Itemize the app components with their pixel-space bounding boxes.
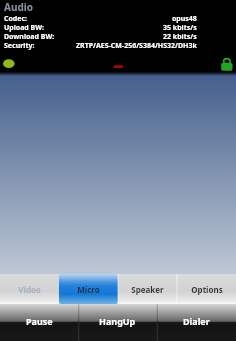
staticText: Pause [26,315,53,327]
button[interactable]: Pause [0,304,78,341]
staticText: Upload BW: [4,23,45,32]
staticText: Codec: [4,14,28,23]
staticText: HangUp [99,315,136,327]
button[interactable]: HangUp [78,304,157,341]
staticText: opus48 [172,14,197,23]
staticText: Security: [4,41,35,50]
button[interactable]: Options [177,274,236,304]
button[interactable]: Micro [59,274,118,304]
staticText: 35 kbits/s [163,23,197,32]
staticText: ZRTP/AES-CM-256/S384/HS32/DH3k [76,41,197,50]
button[interactable]: Speaker [118,274,177,304]
staticText: Speaker [131,284,164,295]
staticText: Video [18,284,41,295]
button[interactable]: Video [0,274,59,304]
staticText: Audio [4,0,33,14]
other: Call is encrypted [0,0,236,72]
staticText: Download BW: [4,32,55,41]
staticText: Micro [77,284,100,295]
button[interactable]: Dialer [157,304,236,341]
staticText: 22 kbits/s [163,32,197,41]
staticText: Dialer [183,315,210,327]
staticText: Options [191,284,223,295]
